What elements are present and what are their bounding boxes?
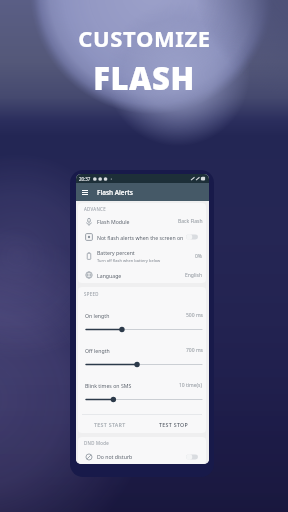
button[interactable] (85, 326, 203, 333)
button[interactable]: Battery percent (78, 245, 206, 267)
staticText: English (185, 272, 203, 279)
staticText: On length (85, 312, 110, 319)
staticText: Flash Alerts (97, 188, 133, 197)
staticText: DND Mode (84, 440, 110, 446)
staticText: Flash Module (97, 218, 130, 225)
button[interactable]: TEST START (78, 415, 142, 433)
button[interactable]: TEST STOP (142, 415, 206, 433)
staticText: Not flash alerts when the screen on (97, 234, 184, 241)
button[interactable]: Language (78, 267, 206, 283)
staticText: TEST STOP (159, 421, 189, 428)
button[interactable]: Do not disturb (78, 449, 206, 464)
staticText: TEST START (94, 421, 126, 428)
staticText: Language (97, 272, 122, 279)
staticText: 10 time(s) (179, 382, 203, 389)
button[interactable]: Flash Module (78, 214, 206, 229)
staticText: 20:37 (79, 176, 91, 182)
staticText: 700 ms (186, 347, 203, 354)
staticText: SPEED (84, 291, 99, 297)
button[interactable]: Not flash alerts when the screen on (78, 229, 206, 245)
staticText: Do not disturb (97, 453, 133, 460)
staticText: FLASH (93, 57, 195, 99)
staticText: Turn off flash when battery below (97, 258, 161, 263)
staticText: Back Flash (178, 218, 203, 225)
staticText: CUSTOMIZE (78, 23, 211, 53)
staticText: 0% (195, 253, 203, 260)
staticText: Off length (85, 347, 110, 354)
staticText: Battery percent (97, 249, 135, 256)
staticText: 500 ms (186, 312, 203, 319)
button[interactable] (85, 361, 203, 368)
button[interactable] (85, 396, 203, 403)
staticText: ADVANCE (84, 206, 106, 212)
staticText: Blink times on SMS (85, 382, 132, 389)
button[interactable]: Open navigation menu (79, 186, 91, 198)
